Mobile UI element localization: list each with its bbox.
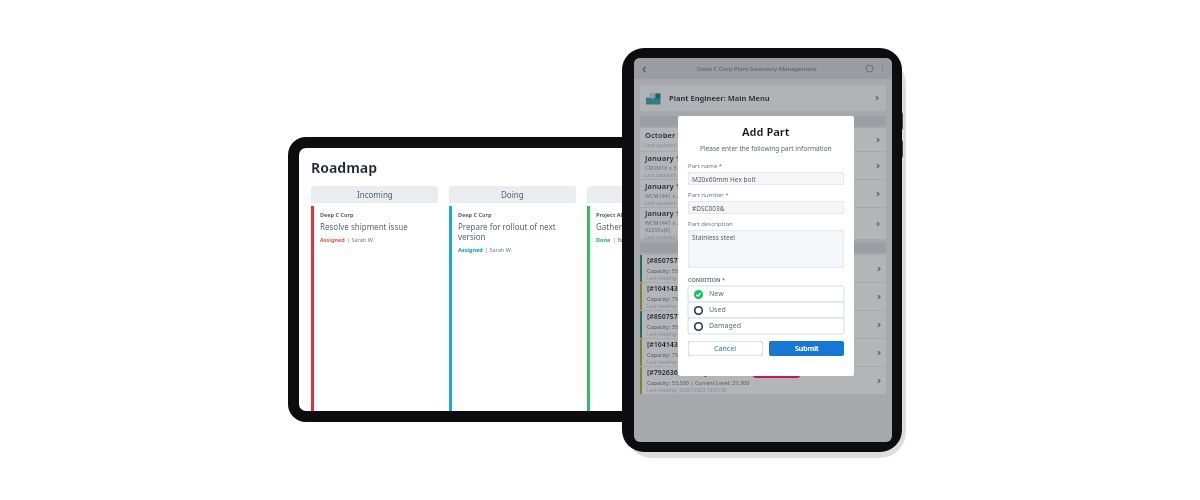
staticText: 92295x(R): [645, 226, 671, 233]
staticText: Assigned: [320, 236, 345, 243]
staticText: WCM1441 x 2: [645, 219, 681, 226]
staticText: [#850757]: [647, 312, 681, 322]
staticText: Last reading: 12/01/2023 10:51:00: [647, 331, 727, 338]
button[interactable]: Back: [639, 64, 649, 74]
button[interactable]: [#850757]: [640, 255, 886, 282]
staticText: Last updated: 2 days ago: [645, 142, 704, 149]
staticText: Plant Engineer: Main Menu: [669, 93, 770, 103]
staticText: [#104143&]: [647, 284, 686, 294]
staticText: CONDITION *: [688, 276, 725, 283]
button[interactable]: [#104143&]: [640, 339, 886, 366]
button[interactable]: Stainless steel: [688, 230, 844, 268]
staticText: | Sarah W.: [347, 236, 374, 243]
staticText: Deep C Corp Plant Inventory Management: [697, 65, 817, 73]
staticText: Damaged: [709, 321, 742, 331]
staticText: Add Part: [742, 124, 790, 139]
staticText: Last updated: 2 days ago: [645, 234, 704, 239]
button[interactable]: Submit: [769, 341, 844, 356]
button[interactable]: Deep C Corp: [449, 206, 576, 411]
staticText: | Sarah W.: [485, 246, 512, 253]
staticText: Last reading: 12/01/2023 10:51:00: [647, 359, 727, 366]
button[interactable]: Done: [587, 186, 693, 203]
staticText: New: [709, 289, 724, 299]
staticText: Roadmap: [311, 158, 378, 177]
staticText: [#792636] Battery 2: CROM16: [647, 368, 748, 378]
staticText: Done: [630, 189, 651, 200]
button[interactable]: [#104143&]: [640, 283, 886, 310]
staticText: Prepare for rollout of next version: [458, 221, 572, 242]
staticText: Resolve shipment issue: [320, 221, 408, 232]
staticText: Last reading: 12/01/2023 10:51:00: [647, 303, 727, 310]
button[interactable]: January 18: [640, 152, 886, 179]
staticText: Done: [596, 236, 611, 243]
staticText: [#104143&]: [647, 340, 686, 350]
staticText: Part name *: [688, 162, 723, 170]
staticText: Last updated: 2 days ago: [645, 200, 704, 207]
staticText: Assigned: [458, 246, 483, 253]
button[interactable]: Refresh: [864, 63, 875, 74]
staticText: Deep C Corp: [458, 211, 492, 218]
staticText: | Brian G.: [613, 236, 639, 243]
staticText: Incoming: [357, 189, 393, 200]
button[interactable]: New: [688, 286, 844, 302]
button[interactable]: [#792636] Battery 2: CROM16: [640, 367, 886, 394]
button[interactable]: Deep C Corp: [311, 206, 438, 411]
button[interactable]: October 25: [640, 128, 886, 151]
button[interactable]: Incoming: [311, 186, 438, 203]
staticText: ROTTED 4.5 tons: [756, 370, 797, 377]
staticText: M20x60mm Hex bolt: [692, 175, 756, 184]
staticText: Part description: [688, 220, 733, 228]
button[interactable]: January 18: [640, 208, 886, 239]
button[interactable]: Plant Engineer: Main Menu: [640, 85, 886, 111]
staticText: Capacity: 75,000 | Current Level: 46,500: [647, 351, 750, 358]
staticText: January 18: [645, 208, 685, 218]
staticText: [#850757]: [647, 256, 681, 266]
staticText: Please enter the following part informat…: [700, 144, 832, 153]
staticText: #DSC003&: [692, 204, 725, 213]
button[interactable]: More options: [878, 64, 887, 73]
staticText: January 18: [645, 181, 685, 191]
button[interactable]: #DSC003&: [688, 201, 844, 214]
staticText: WCM1441 x 2: [645, 192, 681, 199]
button[interactable]: Doing: [449, 186, 576, 203]
staticText: Part number *: [688, 191, 729, 199]
staticText: Capacity: 53,500 | Current Level: 27,300: [647, 379, 750, 386]
staticText: Capacity: 35,000 | Current Level: 19,200: [647, 323, 750, 330]
staticText: Capacity: 55,000 | Current Level: 12,000: [647, 267, 750, 274]
staticText: January 18: [645, 153, 685, 163]
staticText: Doing: [501, 189, 524, 200]
staticText: Cancel: [714, 344, 737, 354]
staticText: Project Alpha: [596, 211, 633, 218]
staticText: October 25: [645, 130, 686, 140]
staticText: Last reading: 12/01/2023 10:51:00: [647, 275, 727, 282]
staticText: Used: [709, 305, 726, 315]
button[interactable]: Project Alpha: [587, 206, 693, 411]
button[interactable]: Used: [688, 302, 844, 318]
staticText: Last updated: 2 days ago: [645, 172, 704, 179]
staticText: Gather requirements: [596, 221, 675, 232]
staticText: Stainless steel: [692, 233, 735, 242]
button[interactable]: Cancel: [688, 341, 763, 356]
button[interactable]: [#850757]: [640, 311, 886, 338]
button[interactable]: January 18: [640, 180, 886, 207]
staticText: CROM16 x 3: [645, 164, 677, 171]
button[interactable]: Damaged: [688, 318, 844, 334]
staticText: Submit: [795, 344, 819, 354]
staticText: Deep C Corp: [320, 211, 354, 218]
button[interactable]: M20x60mm Hex bolt: [688, 172, 844, 185]
staticText: Capacity: 75,000 | Current Level: 46,500: [647, 295, 750, 302]
staticText: Last reading: 12/01/2023 10:51:00: [647, 387, 727, 394]
